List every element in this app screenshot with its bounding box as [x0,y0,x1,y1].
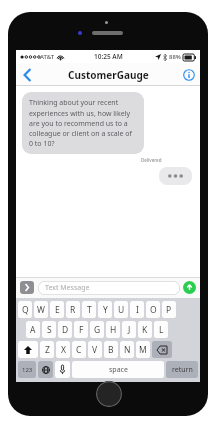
button[interactable]: J [122,321,136,338]
staticText: N [124,344,131,356]
staticText: 123 [22,366,33,374]
staticText: W [37,304,45,316]
staticText: 10:25 AM [94,52,123,61]
button[interactable]: More apps [20,281,34,294]
button[interactable]: return [166,361,198,378]
button[interactable]: R [66,301,80,318]
staticText: F [79,324,84,336]
button[interactable]: L [154,321,168,338]
staticText: return [172,365,193,375]
staticText: space [109,365,128,375]
button[interactable]: Backspace [152,341,172,358]
button[interactable]: Dictate [55,361,70,378]
staticText: K [142,324,148,336]
staticText: T [87,304,92,316]
button[interactable]: N [120,341,134,358]
staticText: C [76,344,82,356]
button[interactable]: M [136,341,150,358]
button[interactable]: S [42,321,56,338]
staticText: S [47,324,52,336]
staticText: CustomerGauge [68,68,149,82]
staticText: V [92,344,98,356]
staticText: B [108,344,114,356]
button[interactable]: Change keyboard [38,361,53,378]
button[interactable]: K [138,321,152,338]
staticText: L [159,324,164,336]
button[interactable]: G [90,321,104,338]
staticText: J [128,324,131,336]
button[interactable]: V [88,341,102,358]
button[interactable] [159,167,192,185]
button[interactable]: Z [40,341,54,358]
button[interactable]: 123 [18,361,36,378]
staticText: Z [45,344,50,356]
staticText: G [94,324,101,336]
staticText: H [110,324,117,336]
button[interactable]: Y [98,301,112,318]
button[interactable]: X [56,341,70,358]
button[interactable]: Shift [18,341,38,358]
button[interactable]: Thinking about your recent experiences w… [22,92,144,154]
staticText: P [166,304,172,316]
button[interactable]: Text Message [38,281,180,295]
staticText: 88% [169,53,181,61]
button[interactable]: H [106,321,120,338]
button[interactable]: Back [16,63,38,86]
staticText: Delivered [141,157,162,163]
staticText: R [70,304,76,316]
staticText: A [30,324,36,336]
staticText: Y [103,304,108,316]
button[interactable]: D [58,321,72,338]
staticText: M [139,344,147,356]
button[interactable]: P [162,301,176,318]
button[interactable]: C [72,341,86,358]
button[interactable]: B [104,341,118,358]
staticText: Text Message [45,283,90,293]
button[interactable]: T [82,301,96,318]
button[interactable]: Q [18,301,32,318]
button[interactable]: W [34,301,48,318]
staticText: AT&T [40,53,55,61]
staticText: Thinking about your recent experiences w… [29,98,137,148]
button[interactable]: Info [178,63,200,86]
button[interactable]: U [114,301,128,318]
button[interactable]: O [146,301,160,318]
staticText: O [150,304,157,316]
button[interactable]: A [26,321,40,338]
button[interactable]: I [130,301,144,318]
staticText: I [136,304,139,316]
button[interactable]: F [74,321,88,338]
button[interactable]: E [50,301,64,318]
staticText: Q [22,304,29,316]
staticText: E [55,304,60,316]
staticText: U [118,304,125,316]
button[interactable]: Send [183,281,196,294]
staticText: X [61,344,66,356]
button[interactable]: space [72,361,164,378]
staticText: D [62,324,69,336]
